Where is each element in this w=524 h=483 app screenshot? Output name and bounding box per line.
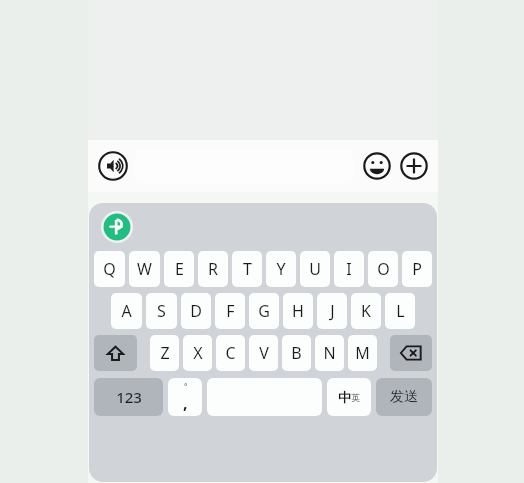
button[interactable]: N [315, 335, 344, 371]
staticText: J [330, 300, 335, 322]
staticText: B [291, 342, 302, 364]
staticText: T [243, 258, 252, 280]
button[interactable]: More [399, 151, 429, 181]
button[interactable]: B [282, 335, 311, 371]
button[interactable]: D [181, 293, 211, 329]
staticText: K [361, 300, 371, 322]
button[interactable]: R [198, 251, 228, 287]
button[interactable]: J [317, 293, 347, 329]
button[interactable]: H [283, 293, 313, 329]
staticText: 123 [116, 387, 142, 407]
staticText: A [121, 300, 132, 322]
button[interactable]: I [334, 251, 364, 287]
staticText: E [175, 258, 184, 280]
staticText: F [226, 300, 235, 322]
staticText: G [258, 300, 270, 322]
button[interactable]: V [249, 335, 278, 371]
staticText: D [190, 300, 202, 322]
button[interactable]: K [351, 293, 381, 329]
button[interactable]: W [129, 251, 160, 287]
button[interactable]: A [111, 293, 142, 329]
button[interactable]: Input method logo [100, 210, 134, 244]
staticText: 英 [351, 392, 360, 403]
button[interactable]: E [164, 251, 194, 287]
button[interactable]: 123 [94, 378, 163, 416]
staticText: Q [103, 258, 116, 280]
button[interactable]: Backspace [390, 335, 432, 371]
button[interactable]: Y [266, 251, 296, 287]
staticText: C [225, 342, 236, 364]
button[interactable]: X [183, 335, 212, 371]
button[interactable]: T [232, 251, 262, 287]
staticText: S [157, 300, 166, 322]
staticText: L [396, 300, 405, 322]
button[interactable]: U [300, 251, 330, 287]
button[interactable]: L [385, 293, 415, 329]
staticText: O [377, 258, 390, 280]
staticText: P [412, 258, 422, 280]
button[interactable]: Space [207, 378, 322, 416]
staticText: 发送 [390, 388, 418, 406]
button[interactable]: Q [94, 251, 125, 287]
button[interactable]: M [348, 335, 377, 371]
staticText: V [259, 342, 269, 364]
staticText: N [323, 342, 336, 364]
button[interactable]: O [368, 251, 398, 287]
button[interactable]: Z [150, 335, 179, 371]
staticText: U [309, 258, 321, 280]
button[interactable]: Switch Chinese English [327, 378, 371, 416]
staticText: X [193, 342, 203, 364]
button[interactable]: C [216, 335, 245, 371]
staticText: Y [276, 258, 286, 280]
button[interactable]: 发送 [376, 378, 432, 416]
staticText: M [355, 342, 370, 364]
button[interactable]: S [146, 293, 177, 329]
button[interactable]: G [249, 293, 279, 329]
button[interactable]: P [402, 251, 432, 287]
staticText: W [137, 258, 152, 280]
staticText: H [292, 300, 304, 322]
button[interactable]: Shift [94, 335, 137, 371]
button[interactable]: F [215, 293, 245, 329]
staticText: ° [184, 381, 188, 392]
staticText: R [208, 258, 218, 280]
staticText: 中 [338, 389, 351, 405]
button[interactable]: Voice input [97, 150, 129, 182]
staticText: Z [160, 342, 170, 364]
button[interactable]: ° [168, 378, 202, 416]
button[interactable]: Emoji [362, 151, 392, 181]
staticText: , [183, 392, 188, 414]
staticText: I [346, 258, 352, 280]
